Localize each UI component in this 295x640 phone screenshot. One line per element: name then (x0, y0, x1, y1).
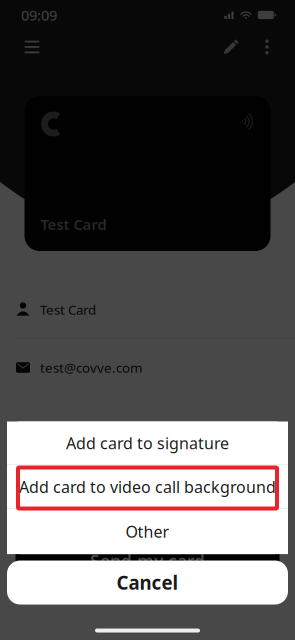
staticText: Test Card (40, 301, 96, 318)
staticText: Add card to signature (66, 432, 229, 454)
button[interactable]: Add card to video call background (7, 465, 288, 508)
button[interactable]: Test Card (0, 281, 295, 338)
staticText: Cancel (116, 570, 178, 595)
button[interactable]: Send my card (15, 539, 279, 583)
button[interactable]: Other (7, 509, 288, 554)
button[interactable]: More options (254, 31, 280, 63)
staticText: Send my card (90, 549, 205, 572)
button[interactable]: Cancel (7, 560, 288, 604)
button[interactable]: Edit (216, 31, 246, 63)
staticText: test@covve.com (40, 359, 142, 376)
button[interactable]: Menu (16, 31, 48, 63)
button[interactable]: Add card to signature (7, 421, 288, 464)
staticText: Test Card (40, 214, 106, 234)
staticText: Other (125, 521, 169, 542)
staticText: 09:09 (21, 5, 57, 25)
staticText: Add card to video call background (19, 476, 276, 497)
button[interactable]: test@covve.com (0, 339, 295, 396)
